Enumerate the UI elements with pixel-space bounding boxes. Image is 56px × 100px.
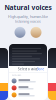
staticText: FEATURED bbox=[12, 73, 22, 77]
button[interactable] bbox=[9, 84, 47, 91]
staticText: High-quality, human-like bbox=[8, 14, 48, 19]
staticText: Select a voice bbox=[18, 67, 38, 71]
button[interactable]: Done bbox=[37, 66, 47, 72]
button[interactable] bbox=[9, 77, 47, 84]
staticText: listening voices bbox=[15, 19, 41, 24]
staticText: Done bbox=[37, 67, 45, 71]
staticText: Natural voices bbox=[4, 3, 51, 12]
button[interactable] bbox=[9, 91, 47, 98]
